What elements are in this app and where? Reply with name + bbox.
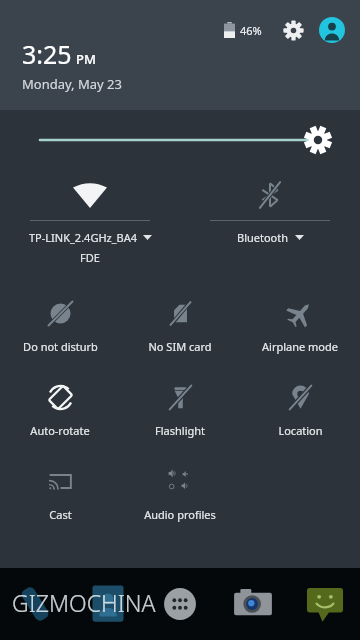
button[interactable]: Auto-rotate (0, 372, 120, 456)
staticText: Location (278, 423, 323, 438)
staticText: Monday, May 23 (22, 75, 122, 93)
button[interactable]: TP-LINK_2.4GHz_BA4 (0, 170, 180, 280)
staticText: 3:25 (22, 37, 72, 71)
staticText: Bluetooth (237, 230, 289, 245)
button[interactable]: Messaging (298, 577, 352, 631)
button[interactable]: Camera (226, 577, 280, 631)
staticText: PM (76, 50, 96, 68)
staticText: Audio profiles (144, 507, 216, 522)
button[interactable]: Brightness (0, 110, 360, 170)
staticText: Do not disturb (23, 339, 98, 354)
staticText: No SIM card (148, 339, 212, 354)
button[interactable]: Audio profiles (120, 456, 240, 540)
button[interactable]: Phone (8, 577, 62, 631)
button[interactable]: User profile (317, 15, 347, 45)
button[interactable]: Apps (153, 577, 207, 631)
button[interactable]: Do not disturb (0, 288, 120, 372)
button[interactable]: Settings (278, 15, 308, 45)
button[interactable]: Cast (0, 456, 120, 540)
staticText: GIZMOCHINA (12, 587, 156, 618)
button[interactable]: Bluetooth (180, 170, 360, 280)
staticText: Flashlight (155, 423, 205, 438)
button[interactable]: Flashlight (120, 372, 240, 456)
button[interactable]: Airplane mode (240, 288, 360, 372)
staticText: FDE (80, 250, 100, 265)
staticText: Auto-rotate (30, 423, 90, 438)
staticText: Cast (49, 507, 72, 522)
button[interactable]: Contacts (81, 577, 135, 631)
button[interactable]: Location (240, 372, 360, 456)
staticText: Airplane mode (262, 339, 338, 354)
button[interactable]: No SIM card (120, 288, 240, 372)
staticText: 46% (240, 23, 262, 38)
staticText: TP-LINK_2.4GHz_BA4 (29, 230, 138, 245)
